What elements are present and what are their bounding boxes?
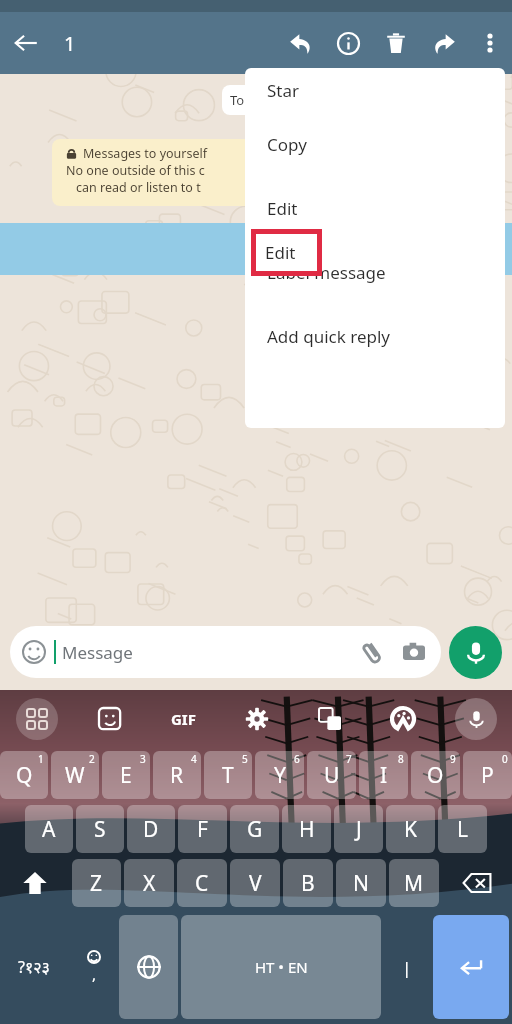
button[interactable]: Reply [276,19,324,67]
staticText: Messages to yourself [83,145,208,162]
staticText: H [299,815,315,844]
staticText: J [356,815,362,844]
button[interactable]: Star [245,68,505,112]
staticText: 6 [294,752,300,766]
staticText: GIF [171,709,196,729]
staticText: 0 [502,752,508,766]
staticText: E [120,761,132,790]
button[interactable]: V [230,859,280,907]
button[interactable]: Y [255,751,304,799]
button[interactable]: Add quick reply [245,304,505,368]
button[interactable]: GIF [147,690,220,748]
button[interactable]: Info [324,19,372,67]
staticText: 1 [64,30,76,57]
button[interactable]: S [76,805,124,853]
staticText: I [380,761,388,790]
button[interactable] [0,223,512,275]
button[interactable]: Forward [420,19,468,67]
button[interactable]: Label message [245,240,505,304]
staticText: P [481,761,494,790]
staticText: F [197,815,208,844]
staticText: B [301,869,315,898]
button[interactable]: X [124,859,174,907]
button[interactable]: F [178,805,227,853]
button[interactable]: | [384,910,430,1024]
button[interactable]: Language [119,915,178,1019]
button[interactable]: Voice message [449,626,502,679]
staticText: 9 [450,752,456,766]
staticText: O [427,761,444,790]
button[interactable]: C [177,859,227,907]
button[interactable]: B [283,859,333,907]
staticText: Add quick reply [267,325,390,348]
staticText: Label message [267,261,386,284]
staticText: D [143,815,159,844]
button[interactable]: U [307,751,356,799]
button[interactable]: L [438,805,487,853]
button[interactable]: Back [0,17,52,69]
button[interactable]: R [153,751,201,799]
button[interactable]: Attach [353,632,393,672]
button[interactable]: Message [10,626,441,678]
staticText: 7 [346,752,352,766]
staticText: R [170,761,184,790]
button[interactable]: K [386,805,435,853]
button[interactable]: Shift [0,856,69,910]
button[interactable]: Z [72,859,121,907]
staticText: No one outside of this c [66,162,205,179]
button[interactable]: Enter [433,915,509,1019]
staticText: U [324,761,340,790]
staticText: G [247,815,263,844]
button[interactable]: T [204,751,252,799]
button[interactable]: Backspace [442,856,512,910]
button[interactable]: Messages to yourself [52,139,282,206]
staticText: K [404,815,417,844]
button[interactable]: I [359,751,408,799]
staticText: HT • EN [255,957,308,977]
button[interactable]: Apps [0,690,74,748]
button[interactable]: D [127,805,175,853]
button[interactable]: H [282,805,331,853]
button[interactable]: Translate [293,690,366,748]
staticText: 3 [140,752,146,766]
staticText: T [222,761,234,790]
staticText: Message [62,641,133,664]
button[interactable]: Emoji [68,910,119,1024]
staticText: | [402,956,412,979]
button[interactable]: J [334,805,383,853]
button[interactable]: Delete [372,19,420,67]
button[interactable]: A [25,805,73,853]
button[interactable]: O [411,751,460,799]
staticText: Z [90,869,103,898]
button[interactable]: ?१२३ [0,910,68,1024]
staticText: ?१२३ [18,956,50,978]
staticText: Edit [267,197,298,220]
staticText: W [65,761,85,790]
button[interactable]: Copy [245,112,505,176]
staticText: X [143,869,156,898]
button[interactable]: Edit [245,176,505,240]
staticText: can read or listen to t [76,179,201,196]
button[interactable]: HT • EN [181,915,381,1019]
button[interactable]: G [230,805,279,853]
button[interactable]: N [336,859,386,907]
button[interactable]: Settings [220,690,293,748]
button[interactable]: P [463,751,512,799]
staticText: L [457,815,469,844]
staticText: V [249,869,262,898]
button[interactable]: More options [468,21,512,65]
staticText: 2 [89,752,95,766]
button[interactable]: Themes [366,690,439,748]
button[interactable]: Stickers [74,690,147,748]
staticText: N [353,869,369,898]
button[interactable]: Q [0,751,48,799]
staticText: 1 [38,752,44,766]
button[interactable]: Camera [393,631,435,673]
button[interactable]: E [102,751,150,799]
staticText: Q [16,761,33,790]
button[interactable]: M [389,859,439,907]
staticText: Y [274,761,286,790]
staticText: Star [267,79,300,102]
button[interactable]: Voice input [439,690,512,748]
button[interactable]: W [51,751,99,799]
